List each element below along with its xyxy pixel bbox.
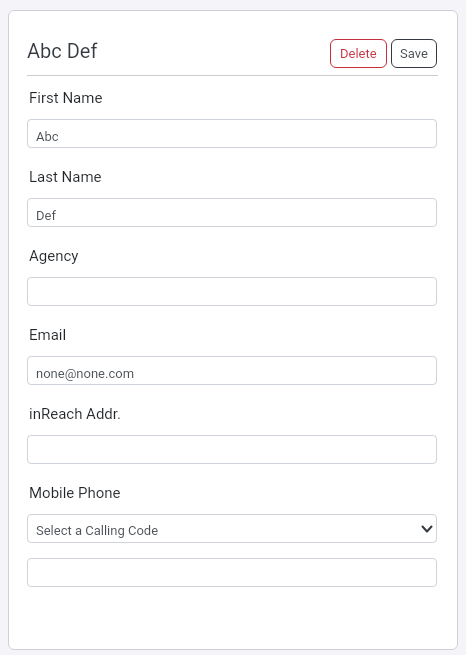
button[interactable] <box>27 558 437 587</box>
button[interactable]: none@none.com <box>27 356 437 385</box>
staticText: inReach Addr. <box>29 405 121 423</box>
staticText: Agency <box>29 247 79 265</box>
staticText: none@none.com <box>36 366 135 381</box>
staticText: Email <box>29 326 67 344</box>
button[interactable]: Save <box>391 39 437 68</box>
button[interactable]: Def <box>27 198 437 227</box>
staticText: Abc Def <box>27 39 98 62</box>
button[interactable]: Select a Calling Code <box>27 514 437 543</box>
button[interactable] <box>27 277 437 306</box>
staticText: Mobile Phone <box>29 484 121 502</box>
staticText: Def <box>36 208 56 223</box>
button[interactable]: Abc <box>27 119 437 148</box>
staticText: Select a Calling Code <box>36 523 159 538</box>
button[interactable]: Delete <box>330 39 387 68</box>
staticText: Save <box>400 46 428 61</box>
staticText: Last Name <box>29 168 102 186</box>
button[interactable] <box>27 435 437 464</box>
staticText: Delete <box>340 46 377 61</box>
staticText: Abc <box>36 129 59 144</box>
staticText: First Name <box>29 89 103 107</box>
